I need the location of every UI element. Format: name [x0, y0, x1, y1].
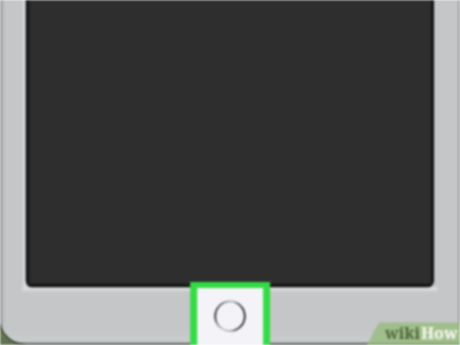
staticText: wiki [385, 322, 421, 344]
button[interactable]: Home button [0, 0, 460, 345]
staticText: How [421, 322, 458, 344]
